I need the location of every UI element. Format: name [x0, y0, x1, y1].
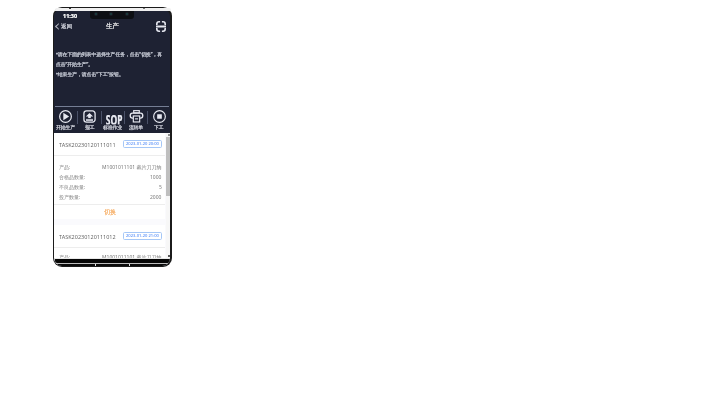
button[interactable]: 报工: [78, 110, 101, 130]
staticText: •请在下面的列表中选择生产任务，点击“切换”，再点击“开始生产”。 •结束生产，…: [56, 51, 164, 78]
staticText: 投产数量:: [59, 194, 81, 201]
staticText: 下工: [154, 124, 164, 130]
staticText: 11:30: [63, 12, 78, 19]
staticText: TASK20230120111011: [59, 141, 116, 148]
staticText: M1001011101 裁片刀刀纳: [102, 164, 162, 171]
staticText: 开始生产: [56, 124, 76, 130]
button[interactable]: SOP: [102, 110, 124, 130]
staticText: 产品:: [59, 164, 71, 171]
staticText: 合格品数量:: [59, 174, 86, 181]
staticText: 5: [159, 184, 162, 191]
staticText: 报工: [85, 124, 95, 130]
button[interactable]: 开始生产: [54, 110, 77, 130]
staticText: 流转单: [129, 124, 144, 130]
staticText: 标准作业: [103, 124, 123, 130]
staticText: 切换: [104, 208, 116, 216]
button[interactable]: 返回: [54, 23, 75, 30]
staticText: 1000: [150, 174, 162, 181]
staticText: TASK20230120111012: [59, 233, 116, 240]
staticText: 2023-01-20 20:00: [126, 141, 159, 147]
staticText: 2023-01-20 21:00: [126, 233, 159, 239]
staticText: M1001011101 裁片刀刀纳: [102, 254, 162, 258]
button[interactable]: 下工: [148, 110, 170, 130]
staticText: 不良品数量:: [59, 184, 86, 191]
button[interactable]: 流转单: [125, 110, 147, 130]
staticText: 生产: [106, 22, 119, 30]
button[interactable]: Scan: [156, 21, 166, 32]
button[interactable]: 切换: [54, 205, 165, 219]
staticText: SOP: [106, 110, 122, 124]
staticText: 产品:: [59, 254, 71, 258]
staticText: 2000: [150, 194, 162, 201]
staticText: 返回: [61, 23, 72, 30]
